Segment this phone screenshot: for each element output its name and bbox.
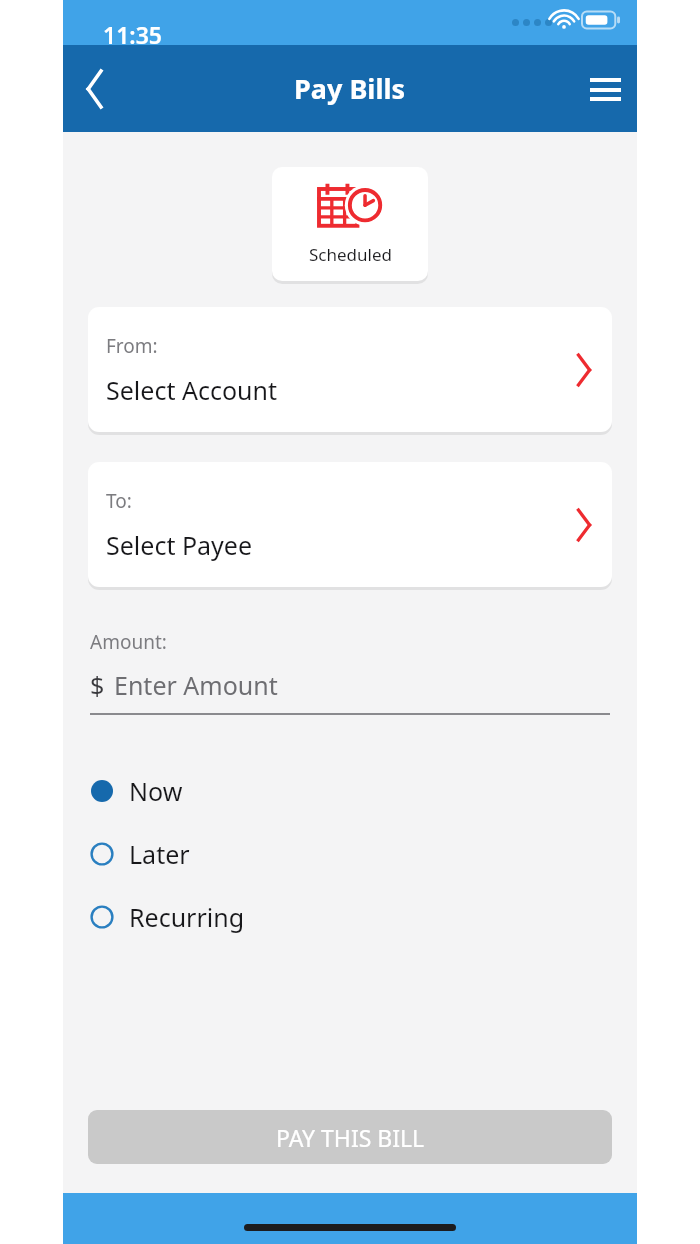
staticText: Later <box>129 837 190 871</box>
button[interactable]: Recurring <box>63 894 637 940</box>
button[interactable]: From: <box>88 307 612 432</box>
staticText: Pay Bills <box>294 70 406 107</box>
staticText: Enter Amount <box>114 668 278 702</box>
button[interactable]: Now <box>63 768 637 814</box>
staticText: Select Account <box>106 373 277 407</box>
button[interactable]: Back <box>63 57 127 121</box>
button[interactable]: Later <box>63 831 637 877</box>
staticText: $ <box>90 668 105 702</box>
staticText: 11:35 <box>103 19 162 50</box>
staticText: Now <box>129 774 183 808</box>
staticText: To: <box>106 488 132 514</box>
staticText: Recurring <box>129 900 245 934</box>
button[interactable]: PAY THIS BILL <box>88 1110 612 1164</box>
staticText: Amount: <box>90 629 167 655</box>
staticText: From: <box>106 333 158 359</box>
button[interactable]: Menu <box>573 57 637 121</box>
staticText: PAY THIS BILL <box>276 1122 425 1153</box>
staticText: Select Payee <box>106 528 253 562</box>
staticText: Scheduled <box>309 243 392 266</box>
button[interactable]: To: <box>88 462 612 587</box>
